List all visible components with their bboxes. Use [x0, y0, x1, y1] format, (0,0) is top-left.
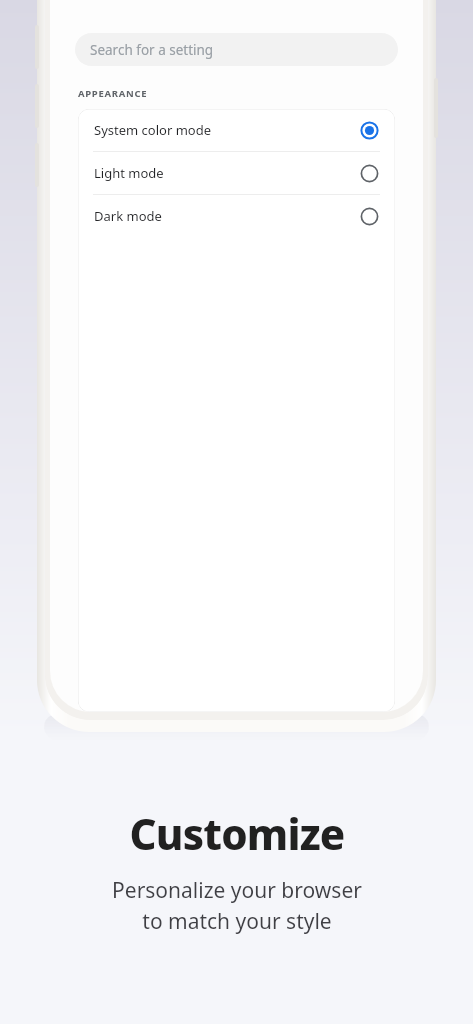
button[interactable]: Search for a setting — [75, 33, 398, 66]
button[interactable]: Light mode — [78, 152, 395, 194]
staticText: Personalize your browser to match your s… — [112, 876, 362, 935]
staticText: Search for a setting — [90, 41, 214, 59]
staticText: Light mode — [94, 164, 360, 182]
staticText: APPEARANCE — [78, 87, 148, 100]
staticText: Customize — [129, 805, 345, 862]
staticText: Dark mode — [94, 207, 360, 225]
button[interactable]: Dark mode — [78, 195, 395, 237]
button[interactable]: System color mode — [78, 109, 395, 151]
staticText: System color mode — [94, 121, 360, 139]
